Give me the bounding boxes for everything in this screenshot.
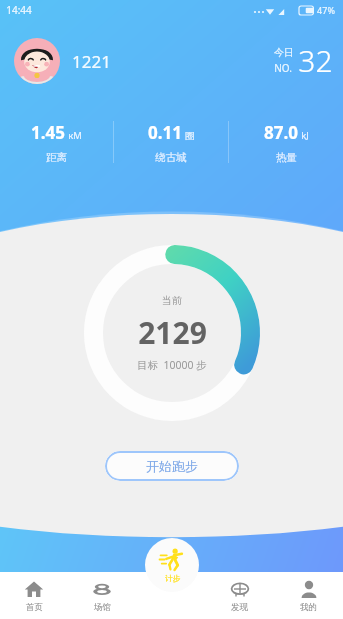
staticText: 1.45	[31, 121, 65, 144]
staticText: 0.11	[148, 121, 182, 144]
button[interactable]: 今日	[274, 40, 333, 81]
button[interactable]: 场馆	[68, 572, 136, 619]
button[interactable]: 我的	[274, 572, 343, 619]
staticText: 今日	[274, 46, 294, 59]
staticText: 圈	[185, 130, 195, 142]
button[interactable]: 0.11	[114, 121, 228, 164]
staticText: 发现	[231, 602, 248, 613]
staticText: 32	[298, 40, 333, 81]
staticText: 2129	[138, 312, 207, 353]
staticText: 热量	[276, 151, 297, 164]
button[interactable]: 首页	[0, 572, 68, 619]
staticText: 计步	[165, 574, 180, 583]
button[interactable]: 1.45	[0, 121, 113, 164]
staticText: kJ	[301, 129, 309, 142]
staticText: 14:44	[6, 3, 32, 17]
staticText: 当前	[162, 294, 182, 307]
staticText: 目标 10000 步	[137, 358, 207, 372]
button[interactable]: 87.0	[229, 121, 343, 164]
staticText: 47%	[317, 4, 335, 16]
staticText: кМ	[68, 129, 82, 142]
staticText: 开始跑步	[146, 458, 198, 474]
button[interactable]: 1221	[14, 38, 111, 84]
button[interactable]: 当前	[84, 245, 260, 421]
staticText: 首页	[26, 602, 43, 613]
staticText: 1221	[72, 50, 111, 73]
button[interactable]: 跑步	[145, 538, 199, 592]
staticText: 我的	[300, 602, 317, 613]
staticText: NO.	[274, 61, 292, 75]
staticText: 场馆	[94, 602, 111, 613]
staticText: 87.0	[264, 121, 298, 144]
staticText: 距离	[46, 151, 67, 164]
button[interactable]: 开始跑步	[105, 451, 239, 481]
button[interactable]: 发现	[205, 572, 274, 619]
staticText: 绕古城	[155, 151, 187, 164]
